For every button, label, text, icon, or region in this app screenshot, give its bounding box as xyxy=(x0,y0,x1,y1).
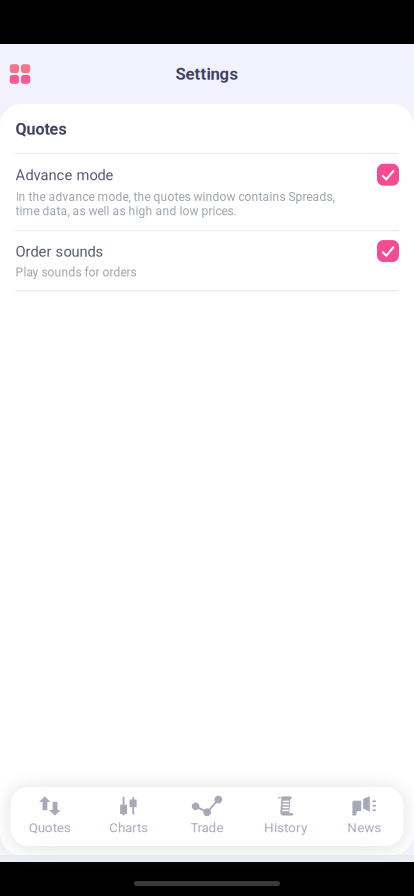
button[interactable]: Charts xyxy=(89,787,168,845)
button[interactable]: Advance mode xyxy=(0,154,414,230)
staticText: Charts xyxy=(109,820,148,835)
button[interactable]: Quotes xyxy=(10,787,89,845)
button[interactable]: Trade xyxy=(168,787,246,845)
button[interactable]: History xyxy=(246,787,325,845)
staticText: Settings xyxy=(175,64,238,84)
staticText: Order sounds xyxy=(15,243,103,260)
staticText: In the advance mode, the quotes window c… xyxy=(15,190,334,218)
staticText: Advance mode xyxy=(15,167,113,184)
button[interactable]: Order sounds xyxy=(0,231,414,290)
staticText: History xyxy=(264,820,307,835)
staticText: Quotes xyxy=(29,820,71,835)
staticText: News xyxy=(347,820,381,835)
staticText: Play sounds for orders xyxy=(15,265,136,279)
staticText: Trade xyxy=(190,820,223,835)
staticText: Quotes xyxy=(15,120,66,139)
button[interactable]: Menu xyxy=(0,44,40,104)
button[interactable]: News xyxy=(325,787,403,845)
